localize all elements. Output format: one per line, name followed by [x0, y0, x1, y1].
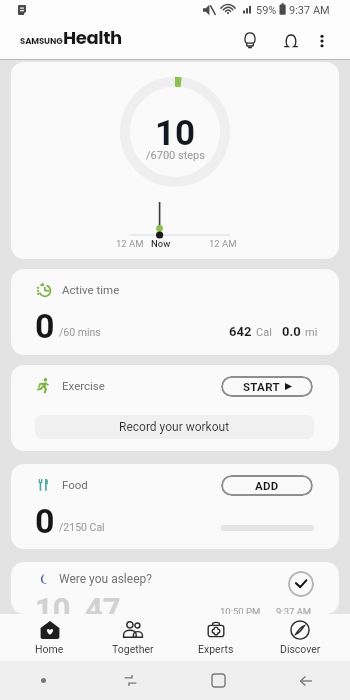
staticText: /2150 Cal — [59, 521, 105, 533]
staticText: Food — [62, 478, 88, 491]
staticText: 9:37 AM — [289, 4, 330, 17]
button[interactable]: Active time — [11, 269, 339, 355]
button[interactable]: Experts — [174, 614, 258, 661]
button[interactable]: More options — [305, 24, 338, 57]
staticText: 10 — [35, 591, 71, 614]
staticText: 642 — [229, 324, 252, 339]
staticText: 0.0 — [282, 324, 301, 339]
button[interactable]: Together — [91, 614, 174, 661]
staticText: Were you asleep? — [59, 572, 152, 586]
button[interactable]: Confirm sleep — [288, 571, 314, 597]
staticText: 10:50 PM — [220, 606, 261, 614]
staticText: 0 — [35, 501, 55, 541]
staticText: Active time — [62, 283, 120, 296]
staticText: 59% — [256, 4, 277, 17]
button[interactable]: Tips — [233, 24, 266, 57]
button[interactable]: Menu — [0, 661, 87, 700]
button[interactable]: Home — [174, 661, 262, 700]
button[interactable]: Home — [8, 614, 91, 661]
button[interactable]: ADD — [221, 475, 313, 496]
staticText: 47 — [85, 591, 121, 614]
button[interactable]: Record your workout — [35, 415, 314, 439]
button[interactable]: Food — [11, 464, 339, 549]
staticText: Exercise — [62, 379, 105, 392]
staticText: 12 AM — [116, 238, 144, 249]
staticText: Health — [63, 25, 122, 50]
staticText: /6700 steps — [146, 149, 205, 162]
staticText: Together — [112, 643, 154, 655]
staticText: Experts — [198, 643, 234, 655]
staticText: Discover — [280, 643, 321, 655]
button[interactable]: Back — [262, 661, 350, 700]
staticText: Home — [35, 643, 64, 655]
staticText: ADD — [255, 479, 279, 492]
staticText: START — [243, 380, 280, 393]
staticText: 10 — [155, 113, 196, 154]
staticText: /60 mins — [59, 326, 101, 338]
button[interactable]: Profile — [274, 24, 307, 57]
staticText: 12 AM — [209, 238, 237, 249]
staticText: mi — [305, 326, 318, 339]
button[interactable]: Recents — [87, 661, 174, 700]
button[interactable]: Discover — [258, 614, 342, 661]
button[interactable]: Were you asleep? — [11, 562, 339, 614]
staticText: 0 — [35, 306, 55, 346]
button[interactable]: START — [221, 376, 313, 397]
staticText: SAMSUNG — [20, 35, 63, 47]
staticText: Cal — [256, 326, 272, 339]
staticText: Now — [151, 238, 171, 249]
staticText: Record your workout — [119, 420, 230, 434]
button[interactable]: 10 — [11, 62, 339, 259]
staticText: 9:37 AM — [276, 606, 312, 614]
